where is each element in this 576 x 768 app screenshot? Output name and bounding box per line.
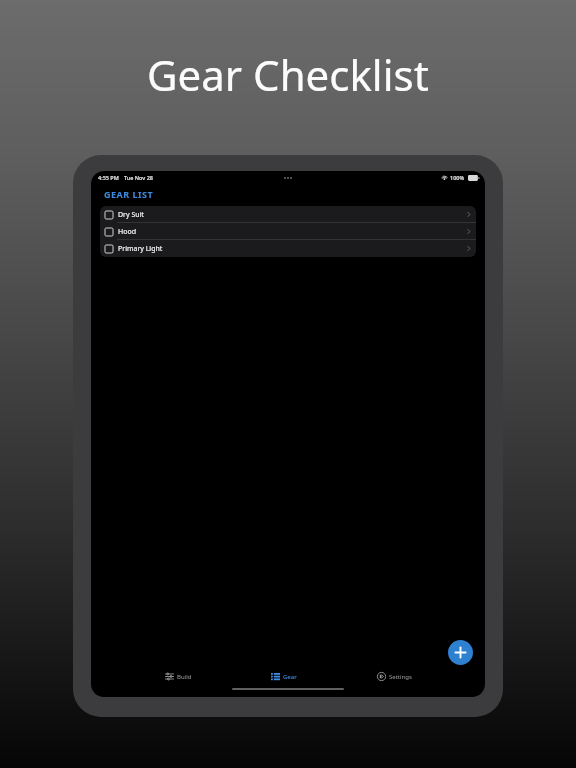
staticText: Primary Light xyxy=(118,244,163,254)
staticText: Gear xyxy=(283,673,297,681)
button[interactable]: Settings xyxy=(371,669,418,684)
button[interactable]: Dry Suit xyxy=(100,206,476,223)
staticText: Tue Nov 28 xyxy=(124,174,153,181)
button[interactable]: Hood xyxy=(100,223,476,240)
staticText: Settings xyxy=(389,673,412,681)
button[interactable]: Gear xyxy=(265,669,303,684)
staticText: Dry Suit xyxy=(118,210,144,220)
button[interactable]: Primary Light xyxy=(100,240,476,257)
staticText: Gear Checklist xyxy=(147,46,429,103)
staticText: 100% xyxy=(450,174,465,181)
staticText: GEAR LIST xyxy=(104,188,154,200)
button[interactable]: Build xyxy=(159,669,198,684)
staticText: Hood xyxy=(118,227,136,237)
staticText: Build xyxy=(177,673,192,681)
button[interactable]: Add gear item xyxy=(448,640,473,665)
staticText: 4:55 PM xyxy=(98,174,119,181)
